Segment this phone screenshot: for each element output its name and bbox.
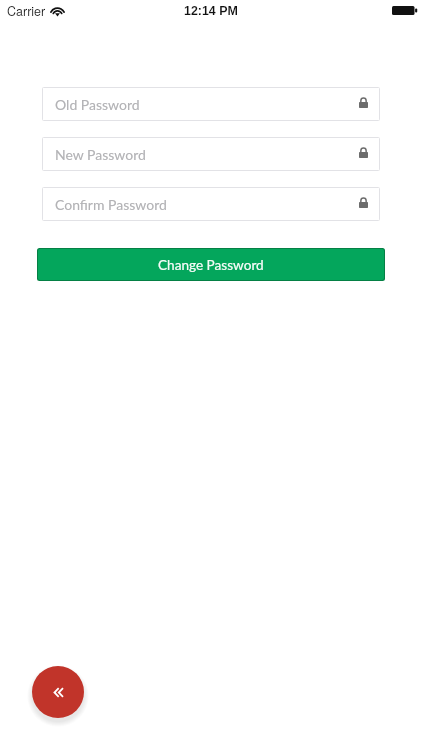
button[interactable]: Old Password xyxy=(42,87,380,121)
button[interactable]: Confirm Password xyxy=(42,187,380,221)
button[interactable]: Change Password xyxy=(38,249,384,280)
staticText: New Password xyxy=(55,146,359,163)
staticText: Confirm Password xyxy=(55,196,359,213)
staticText: Old Password xyxy=(55,96,359,113)
button[interactable]: Back xyxy=(32,666,84,718)
staticText: 12:14 PM xyxy=(184,4,238,18)
button[interactable]: New Password xyxy=(42,137,380,171)
staticText: Carrier xyxy=(7,2,46,20)
staticText: Change Password xyxy=(158,257,264,273)
